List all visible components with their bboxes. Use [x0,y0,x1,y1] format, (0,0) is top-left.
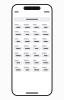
button[interactable] [24,67,31,71]
button[interactable] [42,67,49,71]
button[interactable] [42,31,49,36]
button[interactable] [24,53,31,57]
button[interactable] [14,38,22,43]
button[interactable] [14,17,49,21]
button[interactable] [33,31,40,36]
button[interactable] [42,53,49,57]
button[interactable] [42,38,49,43]
button[interactable] [33,46,40,50]
button[interactable] [24,38,31,43]
button[interactable] [24,24,31,29]
button[interactable] [33,60,40,64]
button[interactable] [14,67,22,71]
button[interactable] [14,46,22,50]
button[interactable] [33,67,40,71]
button[interactable] [33,38,40,43]
button[interactable] [42,46,49,50]
button[interactable] [24,60,31,64]
button[interactable] [42,24,49,29]
button[interactable] [14,31,22,36]
button[interactable] [33,53,40,57]
button[interactable] [33,24,40,29]
button[interactable] [14,60,22,64]
button[interactable] [14,24,22,29]
button[interactable] [42,60,49,64]
button[interactable] [14,53,22,57]
button[interactable] [24,46,31,50]
button[interactable] [24,31,31,36]
